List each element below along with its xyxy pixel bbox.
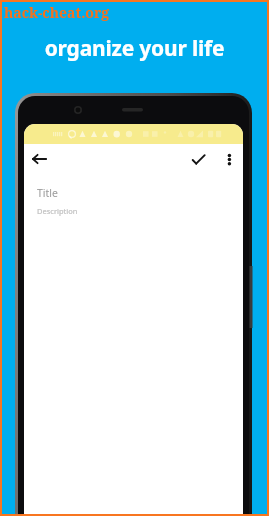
staticText: Title: [37, 186, 58, 200]
staticText: hack-cheat.org: [4, 3, 110, 22]
staticText: organize your life: [0, 34, 269, 63]
button[interactable]: Save: [190, 151, 206, 167]
button[interactable]: More options: [222, 152, 237, 167]
button[interactable]: Back: [31, 150, 49, 168]
staticText: Description: [37, 206, 78, 216]
